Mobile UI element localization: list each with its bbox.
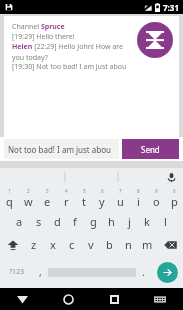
button[interactable]: 1 bbox=[0, 186, 19, 210]
staticText: z bbox=[31, 237, 37, 252]
staticText: 7 bbox=[119, 188, 122, 194]
button[interactable]: j bbox=[120, 210, 138, 233]
staticText: 2 bbox=[27, 188, 30, 194]
button[interactable]: Recent apps bbox=[91, 288, 137, 310]
button[interactable]: s bbox=[29, 210, 48, 233]
button[interactable]: ?123 bbox=[0, 256, 33, 288]
button[interactable]: v bbox=[81, 233, 100, 256]
staticText: q bbox=[6, 194, 13, 209]
button[interactable]: Send bbox=[122, 139, 179, 159]
staticText: 3 bbox=[46, 188, 49, 194]
button[interactable]: Backspace bbox=[157, 233, 183, 256]
button[interactable]: 5 bbox=[75, 186, 93, 210]
staticText: 8 bbox=[137, 188, 140, 194]
button[interactable]: Not too bad! I am just abou bbox=[4, 139, 119, 159]
staticText: b bbox=[106, 237, 113, 252]
button[interactable]: m bbox=[138, 233, 157, 256]
button[interactable]: n bbox=[119, 233, 138, 256]
button[interactable]: 8 bbox=[129, 186, 147, 210]
staticText: 7:31 bbox=[163, 2, 179, 13]
button[interactable]: . bbox=[136, 256, 151, 288]
button[interactable]: b bbox=[100, 233, 119, 256]
staticText: 4 bbox=[65, 188, 68, 194]
button[interactable]: Voice input bbox=[166, 172, 177, 183]
staticText: [19:30] Not too bad! I am just abou bbox=[12, 62, 127, 72]
button[interactable]: Shift bbox=[0, 233, 25, 256]
staticText: n bbox=[125, 237, 132, 252]
staticText: i bbox=[137, 194, 140, 209]
staticText: Send bbox=[141, 144, 160, 155]
staticText: . bbox=[142, 265, 145, 279]
staticText: g bbox=[90, 214, 97, 229]
staticText: w bbox=[24, 194, 33, 209]
staticText: k bbox=[144, 214, 150, 229]
button[interactable]: d bbox=[48, 210, 66, 233]
button[interactable]: Contact avatar bbox=[137, 22, 173, 58]
staticText: 9 bbox=[155, 188, 158, 194]
staticText: r bbox=[64, 194, 69, 209]
staticText: 1 bbox=[8, 188, 11, 194]
button[interactable]: f bbox=[66, 210, 84, 233]
button[interactable]: 4 bbox=[57, 186, 75, 210]
button[interactable]: x bbox=[43, 233, 62, 256]
staticText: u bbox=[117, 194, 124, 209]
staticText: , bbox=[39, 265, 42, 279]
button[interactable]: Enter bbox=[157, 262, 178, 283]
staticText: Channel Spruce bbox=[12, 22, 65, 32]
button[interactable]: l bbox=[156, 210, 174, 233]
button[interactable]: a bbox=[10, 210, 29, 233]
staticText: [19:29] Hello there! bbox=[12, 32, 75, 42]
button[interactable]: Back bbox=[0, 288, 45, 310]
staticText: d bbox=[54, 214, 61, 229]
staticText: l bbox=[164, 214, 167, 229]
button[interactable]: Home bbox=[45, 288, 91, 310]
button[interactable]: 3 bbox=[38, 186, 57, 210]
staticText: a bbox=[16, 214, 23, 229]
staticText: c bbox=[69, 237, 75, 252]
button[interactable]: c bbox=[62, 233, 81, 256]
button[interactable]: g bbox=[84, 210, 102, 233]
button[interactable]: 6 bbox=[93, 186, 111, 210]
staticText: m bbox=[142, 237, 153, 252]
staticText: t bbox=[82, 194, 86, 209]
button[interactable]: k bbox=[138, 210, 156, 233]
button[interactable]: 2 bbox=[19, 186, 38, 210]
staticText: v bbox=[88, 237, 94, 252]
button[interactable]: z bbox=[25, 233, 43, 256]
button[interactable]: 9 bbox=[147, 186, 165, 210]
staticText: Not too bad! I am just abou bbox=[8, 144, 111, 155]
button[interactable]: Space bbox=[48, 256, 136, 288]
staticText: p bbox=[171, 194, 178, 209]
staticText: s bbox=[36, 214, 42, 229]
staticText: 6 bbox=[101, 188, 104, 194]
staticText: y bbox=[99, 194, 105, 209]
staticText: h bbox=[108, 214, 115, 229]
staticText: j bbox=[128, 214, 131, 229]
button[interactable]: 7 bbox=[111, 186, 129, 210]
button[interactable]: 0 bbox=[165, 186, 183, 210]
staticText: f bbox=[73, 214, 77, 229]
staticText: Helen [22:29] Hello John! How are you to… bbox=[12, 42, 133, 62]
staticText: e bbox=[44, 194, 51, 209]
staticText: 5 bbox=[83, 188, 86, 194]
staticText: x bbox=[50, 237, 56, 252]
button[interactable]: h bbox=[102, 210, 120, 233]
button[interactable]: , bbox=[33, 256, 48, 288]
button[interactable]: Switch keyboard bbox=[137, 288, 183, 310]
staticText: ?123 bbox=[9, 267, 25, 277]
staticText: o bbox=[153, 194, 160, 209]
staticText: 0 bbox=[173, 188, 176, 194]
